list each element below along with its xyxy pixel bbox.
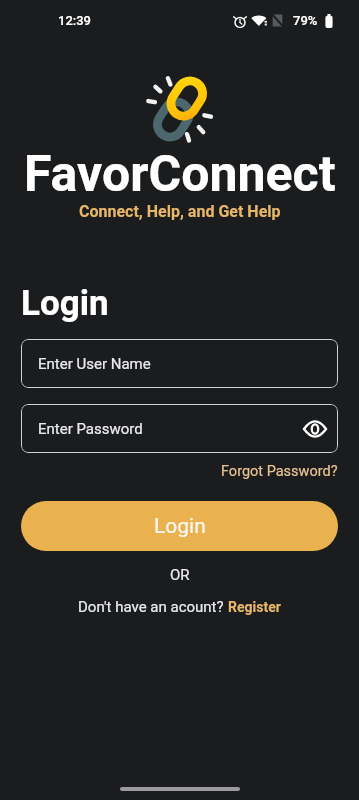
staticText: Enter Password	[38, 420, 143, 438]
staticText: 79%	[293, 13, 318, 28]
button[interactable]: Show password	[297, 411, 333, 447]
staticText: OR	[170, 566, 190, 584]
button[interactable]: Login	[21, 501, 338, 551]
button[interactable]: Enter Password	[21, 404, 338, 453]
staticText: 12:39	[58, 13, 92, 28]
staticText: Register	[228, 599, 281, 615]
staticText: Enter User Name	[38, 355, 151, 373]
staticText: FavorConnect	[24, 145, 336, 204]
staticText: Login	[154, 514, 206, 539]
button[interactable]: Register	[228, 599, 281, 615]
staticText: Forgot Password?	[221, 463, 338, 480]
button[interactable]: Forgot Password?	[221, 463, 338, 480]
staticText: Connect, Help, and Get Help	[79, 202, 281, 221]
staticText: Login	[21, 283, 109, 324]
button[interactable]: Enter User Name	[21, 339, 338, 388]
staticText: Don't have an acount?	[78, 598, 228, 616]
